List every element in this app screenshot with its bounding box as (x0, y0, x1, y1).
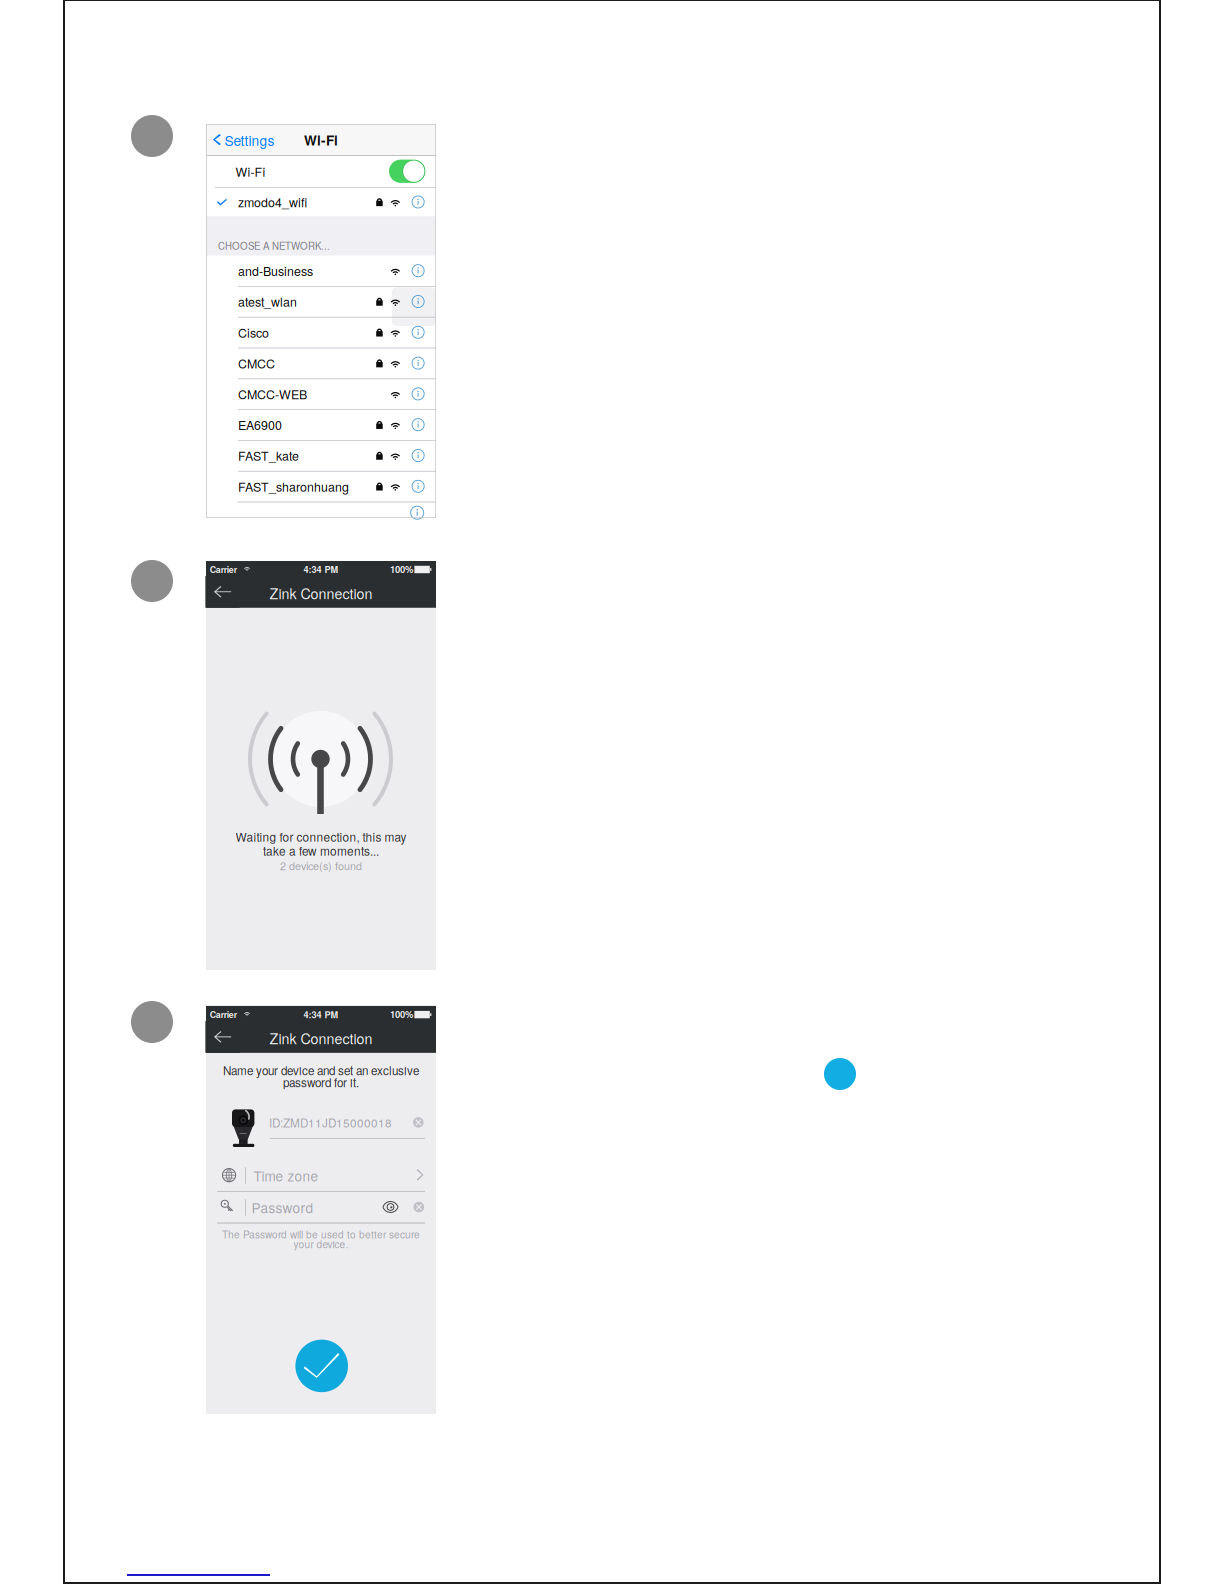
button[interactable]: Settings (206, 124, 276, 155)
button[interactable]: Show password (383, 1201, 398, 1212)
button[interactable]: FAST_sharonhuang (206, 471, 436, 502)
staticText: Password (251, 1198, 313, 1217)
button[interactable]: Password (248, 1193, 378, 1221)
button[interactable]: Clear password (414, 1202, 424, 1212)
staticText: your device. (293, 1236, 348, 1251)
button[interactable]: Time zone (206, 1159, 436, 1191)
staticText: The Password will be used to better secu… (222, 1227, 420, 1241)
staticText: CMCC (238, 354, 275, 372)
staticText: take a few moments... (263, 842, 379, 859)
staticText: 100% (390, 562, 413, 576)
button[interactable]: Wi-Fi on (389, 160, 425, 183)
button[interactable]: and-Business (206, 255, 436, 286)
staticText: Wi-Fi (236, 163, 266, 180)
button[interactable]: Back (206, 1021, 240, 1053)
staticText: ID:ZMD11JD15000018 (269, 1114, 392, 1131)
staticText: and-Business (238, 262, 313, 280)
staticText: zmodo4_wifi (238, 193, 307, 211)
button[interactable]: EA6900 (206, 409, 436, 440)
staticText: CHOOSE A NETWORK... (218, 239, 330, 252)
staticText: Carrier (210, 1008, 237, 1021)
staticText: CMCC-WEB (238, 385, 307, 403)
staticText: 2 device(s) found (280, 858, 362, 873)
staticText: atest_wlan (238, 293, 297, 310)
staticText: Cisco (238, 323, 269, 341)
staticText: Waiting for connection, this may (235, 828, 406, 845)
staticText: Name your device and set an exclusive (223, 1062, 419, 1078)
staticText: EA6900 (238, 416, 282, 434)
button[interactable]: zmodo4_wifi (206, 187, 436, 217)
button[interactable]: Clear device name (413, 1117, 424, 1128)
button[interactable]: Back (206, 576, 240, 607)
staticText: 4:34 PM (303, 1008, 338, 1021)
button[interactable]: Cisco (206, 317, 436, 348)
button[interactable]: ID:ZMD11JD15000018 (264, 1111, 410, 1135)
staticText: 100% (390, 1007, 413, 1021)
staticText: Zink Connection (269, 1028, 372, 1048)
staticText: Settings (225, 130, 275, 150)
button[interactable]: CMCC-WEB (206, 378, 436, 409)
staticText: Carrier (210, 563, 237, 576)
button[interactable]: FAST_kate (206, 440, 436, 471)
button[interactable]: Confirm (295, 1340, 348, 1392)
button[interactable]: CMCC (206, 348, 436, 378)
staticText: Zink Connection (269, 583, 372, 603)
staticText: FAST_sharonhuang (238, 477, 349, 495)
staticText: Time zone (253, 1166, 318, 1185)
staticText: 4:34 PM (303, 563, 338, 576)
staticText: Wi-Fi (304, 130, 338, 150)
staticText: FAST_kate (238, 447, 299, 464)
button[interactable]: atest_wlan (206, 286, 436, 317)
staticText: password for it. (283, 1074, 359, 1090)
